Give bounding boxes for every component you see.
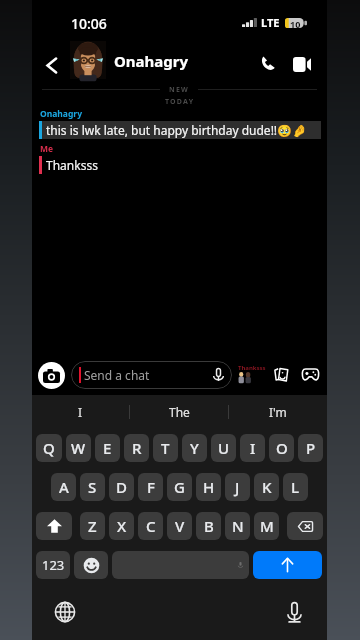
staticText: P [306,438,316,458]
button[interactable]: F [138,473,163,501]
button[interactable]: Q [36,434,62,462]
staticText: T [161,438,170,458]
button[interactable]: C [138,512,163,540]
button[interactable]: R [124,434,149,462]
button[interactable]: Shift [36,512,72,540]
staticText: V [175,516,185,536]
staticText: N [232,516,244,536]
staticText: TODAY [165,97,195,107]
button[interactable]: J [225,473,250,501]
button[interactable]: X [109,512,134,540]
button[interactable]: D [109,473,134,501]
staticText: E [103,438,112,458]
button[interactable]: Thanksss [39,156,98,174]
button[interactable]: Recent sticker [238,364,278,386]
staticText: C [146,516,156,536]
staticText: O [276,438,288,458]
button[interactable]: M [254,512,279,540]
button[interactable]: A [51,473,76,501]
button[interactable]: Send a chat [71,361,232,389]
staticText: X [117,516,127,536]
button[interactable]: U [211,434,236,462]
button[interactable]: Video call [290,52,314,76]
staticText: W [71,438,86,458]
staticText: A [59,477,69,497]
button[interactable]: O [269,434,294,462]
button[interactable]: K [254,473,279,501]
staticText: I [250,438,256,458]
button[interactable]: Backspace [287,512,323,540]
staticText: B [204,516,214,536]
staticText: J [235,477,240,497]
staticText: H [203,477,215,497]
button[interactable]: Send [253,551,322,579]
button[interactable]: I'm [229,395,327,428]
staticText: Y [190,438,199,458]
staticText: G [174,477,185,497]
button[interactable]: Call [256,51,280,75]
staticText: LTE [261,15,280,30]
button[interactable]: Stickers [270,363,292,385]
button[interactable]: P [298,434,323,462]
button[interactable]: L [283,473,308,501]
button[interactable]: 123 [36,551,70,579]
button[interactable]: Emoji [74,551,108,579]
staticText: 10:06 [71,14,107,33]
staticText: The [169,404,190,420]
button[interactable]: Back [39,53,63,77]
staticText: D [116,477,127,497]
button[interactable]: E [95,434,120,462]
button[interactable]: B [196,512,221,540]
button[interactable]: W [66,434,91,462]
staticText: K [262,477,272,497]
button[interactable]: V [167,512,192,540]
button[interactable]: Space [112,551,249,579]
staticText: Thanksss [238,364,266,372]
staticText: S [88,477,97,497]
button[interactable]: The [130,395,228,428]
staticText: F [147,477,155,497]
button[interactable]: Onahagry [114,51,189,71]
button[interactable]: Change keyboard [52,599,78,625]
staticText: R [132,438,142,458]
button[interactable]: this is lwk late, but happy birthday dud… [39,121,321,139]
staticText: Thanksss [46,157,98,173]
staticText: Me [40,143,54,155]
staticText: M [260,516,274,536]
staticText: 10 [290,18,301,28]
button[interactable]: Voice input [281,599,307,625]
button[interactable]: S [80,473,105,501]
button[interactable]: Camera [38,362,65,389]
button[interactable]: N [225,512,250,540]
staticText: L [291,477,300,497]
staticText: Q [43,438,55,458]
button[interactable]: I [240,434,265,462]
button[interactable]: H [196,473,221,501]
staticText: 123 [42,556,65,574]
staticText: NEW [169,85,189,95]
staticText: this is lwk late, but happy birthday dud… [46,122,307,138]
staticText: I [78,404,83,420]
button[interactable]: Games [299,363,321,385]
button[interactable]: I [32,395,129,428]
staticText: Z [88,516,97,536]
button[interactable]: T [153,434,178,462]
staticText: Onahagry [40,108,82,120]
button[interactable]: G [167,473,192,501]
staticText: U [218,438,230,458]
button[interactable]: Y [182,434,207,462]
button[interactable]: Z [80,512,105,540]
staticText: I'm [269,404,287,420]
staticText: Send a chat [84,367,150,383]
